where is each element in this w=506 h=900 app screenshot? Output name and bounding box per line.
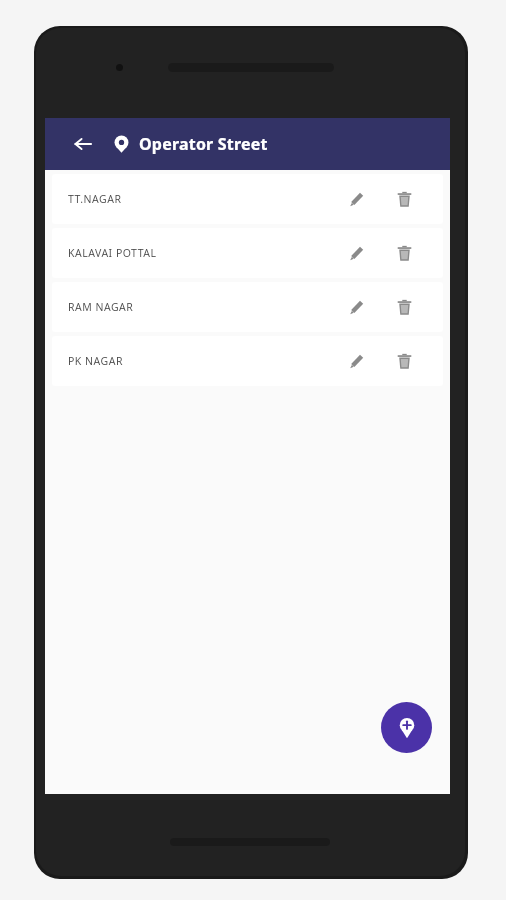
button[interactable]: Edit TT.NAGAR bbox=[339, 182, 373, 216]
button[interactable]: RAM NAGAR bbox=[52, 282, 443, 332]
button[interactable]: Edit RAM NAGAR bbox=[339, 290, 373, 324]
button[interactable]: Delete KALAVAI POTTAL bbox=[387, 236, 421, 270]
button[interactable]: PK NAGAR bbox=[52, 336, 443, 386]
staticText: Operator Street bbox=[139, 133, 268, 155]
button[interactable]: Edit PK NAGAR bbox=[339, 344, 373, 378]
button[interactable]: KALAVAI POTTAL bbox=[52, 228, 443, 278]
staticText: PK NAGAR bbox=[68, 354, 339, 368]
button[interactable]: TT.NAGAR bbox=[52, 174, 443, 224]
button[interactable]: Back bbox=[69, 130, 97, 158]
staticText: TT.NAGAR bbox=[68, 192, 339, 206]
button[interactable]: Delete TT.NAGAR bbox=[387, 182, 421, 216]
button[interactable]: Delete PK NAGAR bbox=[387, 344, 421, 378]
staticText: KALAVAI POTTAL bbox=[68, 246, 339, 260]
staticText: RAM NAGAR bbox=[68, 300, 339, 314]
button[interactable]: Edit KALAVAI POTTAL bbox=[339, 236, 373, 270]
button[interactable]: Delete RAM NAGAR bbox=[387, 290, 421, 324]
button[interactable]: Add street bbox=[381, 702, 432, 753]
